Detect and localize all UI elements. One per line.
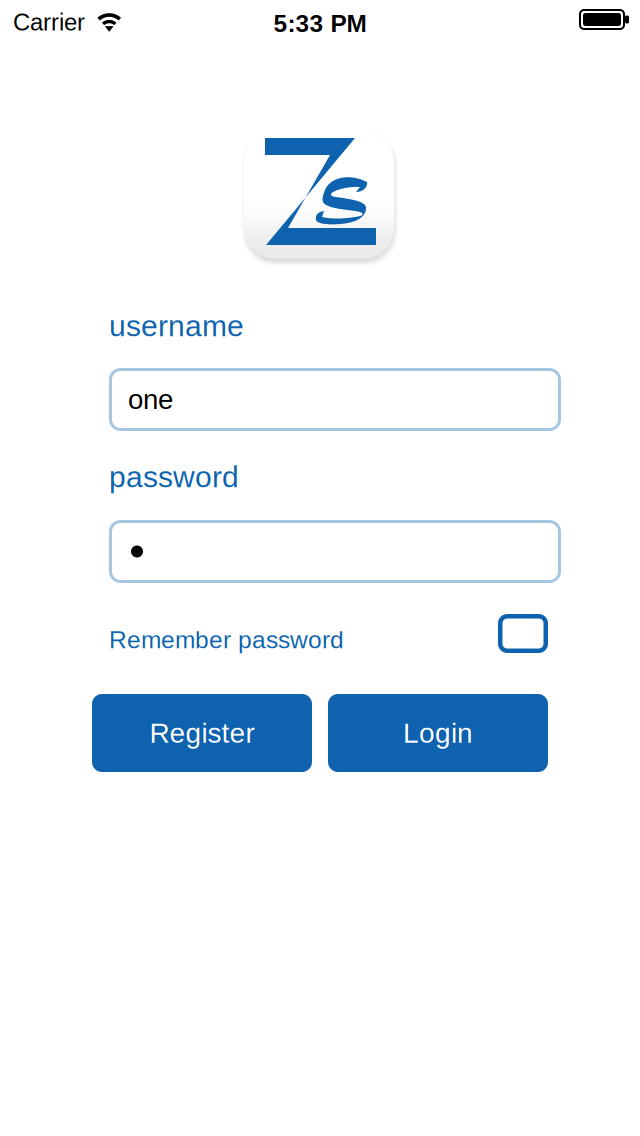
button[interactable]: Login (328, 694, 548, 772)
staticText: one (128, 384, 173, 415)
staticText: Remember password (109, 626, 344, 653)
staticText: Register (149, 717, 254, 749)
staticText: Carrier (13, 9, 85, 36)
button[interactable]: Register (92, 694, 312, 772)
staticText: Login (403, 717, 473, 749)
staticText: password (109, 460, 239, 493)
button[interactable]: Remember password (498, 614, 548, 653)
staticText: 5:33 PM (273, 10, 366, 37)
staticText: username (109, 309, 244, 342)
